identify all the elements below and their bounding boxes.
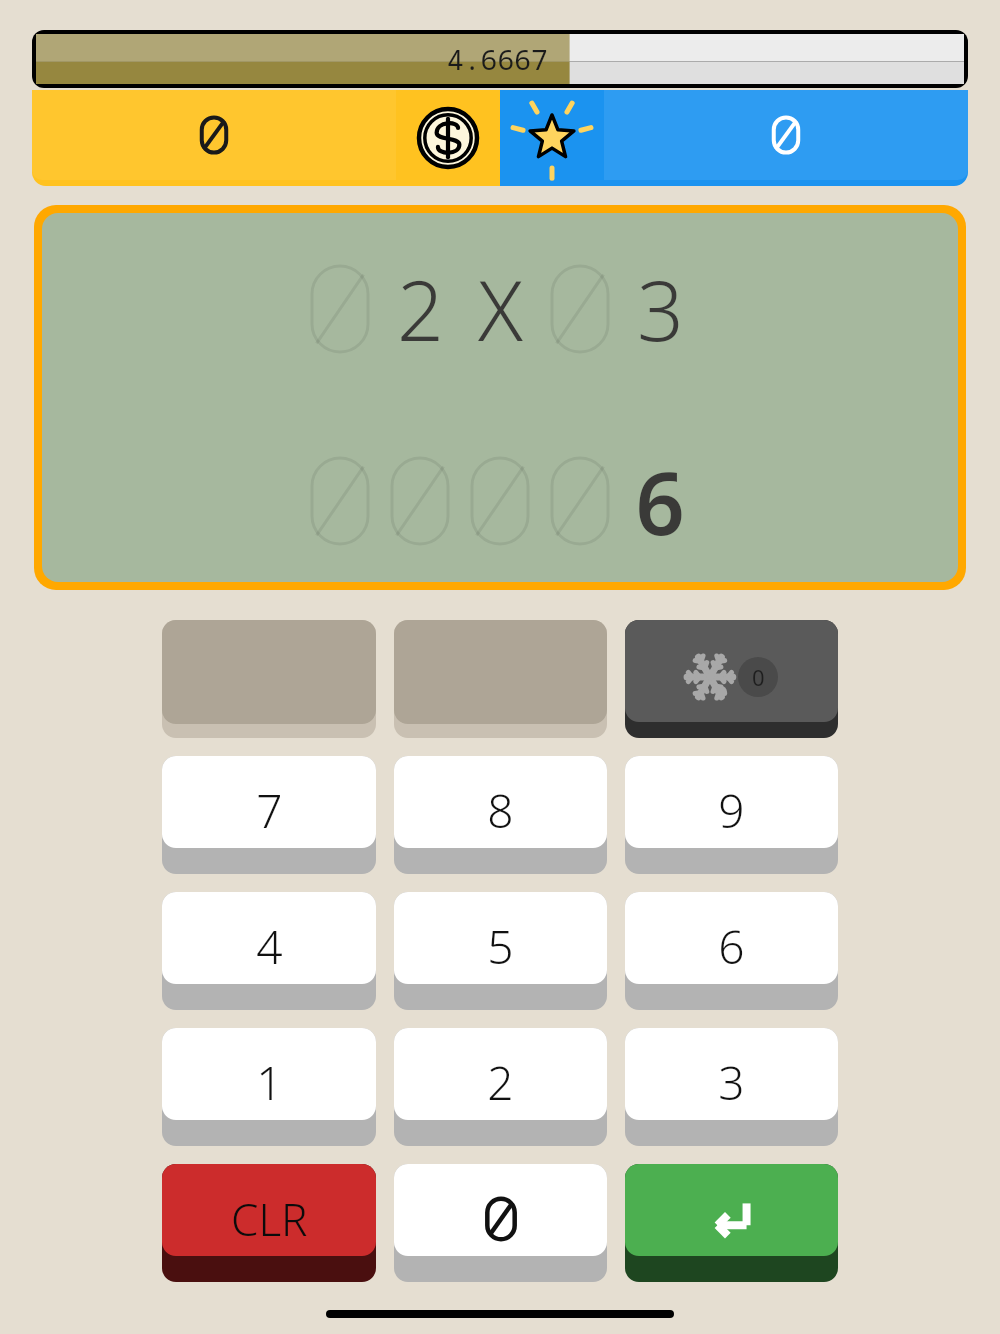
staticText: 3 [637,253,684,365]
button[interactable] [32,90,500,186]
button[interactable]: 5 [394,892,607,1010]
button[interactable]: CLR [162,1164,376,1282]
staticText: 0 [752,662,765,692]
staticText: 1 [256,1051,283,1114]
button[interactable]: 7 [162,756,376,874]
button[interactable]: 4.6667 [32,30,968,88]
button[interactable]: Freeze power-up, 0 available [625,620,838,738]
staticText: X [478,253,523,365]
button[interactable]: 8 [394,756,607,874]
staticText: 6 [718,915,745,978]
staticText: 6 [635,443,685,560]
button[interactable]: Enter [625,1164,838,1282]
staticText: 8 [487,779,514,842]
button[interactable] [394,620,607,738]
button[interactable]: 4 [162,892,376,1010]
button[interactable] [500,90,968,186]
staticText: 4 [256,915,283,978]
staticText: CLR [231,1189,308,1249]
button[interactable] [162,620,376,738]
button[interactable]: 3 [625,1028,838,1146]
button[interactable]: Zero [394,1164,607,1282]
staticText: 9 [718,779,745,842]
button[interactable]: 6 [625,892,838,1010]
staticText: 2 [487,1051,514,1114]
button[interactable]: 9 [625,756,838,874]
staticText: 5 [487,915,514,978]
button[interactable]: 2 [394,1028,607,1146]
staticText: 2 [397,253,444,365]
staticText: 3 [718,1051,745,1114]
staticText: 4.6667 [447,40,548,78]
button[interactable]: 1 [162,1028,376,1146]
staticText: 7 [256,779,283,842]
